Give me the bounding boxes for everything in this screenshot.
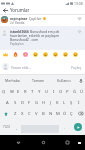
button[interactable]: Z: [11, 108, 19, 119]
button[interactable]: N: [47, 108, 54, 119]
button[interactable]: Q: [0, 86, 8, 97]
staticText: İ: [78, 100, 80, 106]
button[interactable]: arpinpinar: [0, 15, 85, 26]
staticText: Yorum ekle...: [11, 65, 70, 69]
staticText: J: [50, 100, 52, 106]
button[interactable]: ,: [12, 119, 21, 135]
button[interactable]: W: [8, 86, 15, 97]
staticText: Yanıtla: [15, 21, 25, 25]
button[interactable]: Emoji: [62, 51, 69, 58]
staticText: Paylaş: [71, 65, 82, 69]
button[interactable]: R: [22, 86, 29, 97]
staticText: W: [10, 89, 14, 95]
staticText: Tamam: [32, 78, 45, 83]
button[interactable]: O: [57, 86, 64, 97]
button[interactable]: istanbl3666: [0, 26, 85, 50]
button[interactable]: Ö: [61, 108, 68, 119]
staticText: Y: [38, 89, 41, 95]
staticText: N: [49, 111, 53, 117]
button[interactable]: Recents: [60, 139, 74, 146]
button[interactable]: K: [54, 97, 61, 108]
button[interactable]: D: [19, 97, 26, 108]
button[interactable]: Like: [77, 16, 82, 21]
button[interactable]: Ş: [68, 97, 75, 108]
button[interactable]: A: [3, 97, 11, 108]
button[interactable]: I: [50, 86, 57, 97]
button[interactable]: Y: [36, 86, 43, 97]
button[interactable]: İ: [75, 97, 82, 108]
staticText: E: [17, 89, 20, 95]
button[interactable]: Kullanıcı: [51, 75, 77, 86]
staticText: Ç: [70, 111, 73, 117]
staticText: hazırlanlan, etkinlik ve paylaşım: [10, 33, 60, 37]
button[interactable]: Emoji: [22, 51, 29, 58]
button[interactable]: M: [54, 108, 61, 119]
button[interactable]: Home: [36, 139, 50, 146]
button[interactable]: Merhaba: [0, 75, 25, 86]
staticText: BonusfoodZ . com: [10, 37, 39, 41]
staticText: T: [31, 89, 34, 95]
button[interactable]: Switch keyboard: [73, 139, 85, 146]
button[interactable]: H: [40, 97, 47, 108]
staticText: M: [56, 111, 60, 117]
button[interactable]: Like: [77, 29, 82, 34]
staticText: Kullanıcı: [57, 78, 71, 83]
button[interactable]: Emoji: [42, 51, 49, 58]
staticText: Çayıl bir: [29, 16, 42, 20]
staticText: C: [28, 111, 31, 117]
staticText: Bonusfood em pdt: [30, 29, 59, 33]
button[interactable]: Voice input: [77, 75, 85, 86]
button[interactable]: Emoji: [72, 51, 79, 58]
staticText: Ş: [70, 100, 73, 106]
button[interactable]: L: [61, 97, 68, 108]
button[interactable]: Emoji: [52, 51, 59, 58]
staticText: G: [35, 100, 39, 106]
staticText: 2d: [10, 21, 14, 25]
staticText: Q: [2, 89, 6, 95]
staticText: ?123: [3, 125, 10, 129]
button[interactable]: Send: [70, 119, 85, 135]
staticText: 19:08: [74, 1, 83, 6]
button[interactable]: Emoji: [12, 51, 19, 58]
staticText: ,: [16, 125, 18, 130]
staticText: X: [21, 111, 24, 117]
staticText: Ğ: [73, 89, 77, 95]
button[interactable]: B: [40, 108, 47, 119]
button[interactable]: Ü: [78, 86, 85, 97]
button[interactable]: Tamam: [25, 75, 51, 86]
button[interactable]: T: [29, 86, 36, 97]
staticText: Z: [14, 111, 17, 117]
button[interactable]: Backspace: [75, 108, 85, 119]
staticText: S: [14, 100, 17, 106]
button[interactable]: Back: [0, 6, 10, 14]
button[interactable]: Emoji: [32, 51, 39, 58]
button[interactable]: C: [26, 108, 33, 119]
button[interactable]: Emoji: [2, 51, 9, 58]
button[interactable]: F: [26, 97, 33, 108]
button[interactable]: U: [43, 86, 50, 97]
button[interactable]: V: [33, 108, 40, 119]
staticText: F: [28, 100, 31, 106]
button[interactable]: ?123: [0, 119, 12, 135]
staticText: arpinpinar: [10, 16, 28, 20]
button[interactable]: E: [15, 86, 22, 97]
staticText: L: [63, 100, 66, 106]
staticText: Merhaba: [5, 78, 20, 83]
button[interactable]: P: [64, 86, 71, 97]
button[interactable]: X: [19, 108, 26, 119]
staticText: Ö: [63, 111, 67, 117]
button[interactable]: G: [33, 97, 40, 108]
button[interactable]: Paylaş: [70, 64, 83, 70]
staticText: Paylaşılan: [10, 42, 24, 46]
button[interactable]: Back: [11, 139, 25, 146]
staticText: D: [21, 100, 25, 106]
button[interactable]: Ç: [68, 108, 75, 119]
button[interactable]: J: [47, 97, 54, 108]
staticText: I: [53, 89, 55, 95]
button[interactable]: Shift: [0, 108, 11, 119]
button[interactable]: Ğ: [71, 86, 78, 97]
button[interactable]: S: [11, 97, 19, 108]
staticText: B: [42, 111, 45, 117]
